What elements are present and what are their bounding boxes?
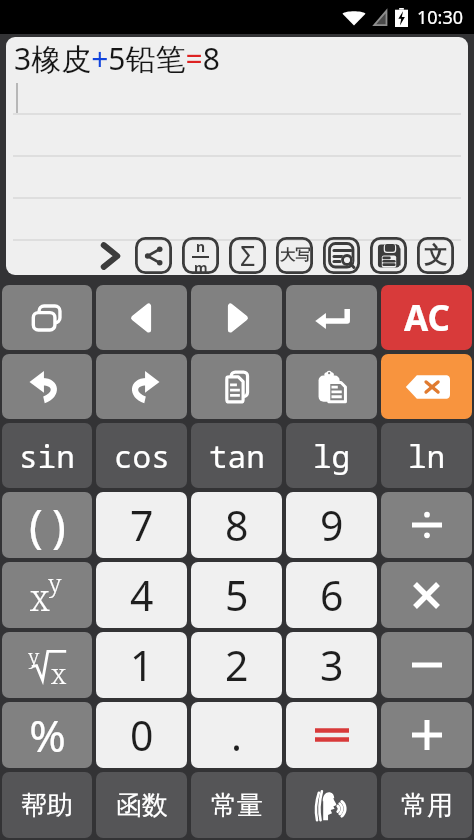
staticText: 10:30 [417,5,464,30]
staticText: % [29,705,66,765]
other: Divide [412,511,442,539]
staticText: 文 [424,241,447,270]
button[interactable]: Plus [381,702,472,768]
other: Move left [127,303,157,333]
button[interactable]: Enter [286,285,377,350]
other: Redo [123,370,161,404]
other: Plus [412,720,442,750]
button[interactable]: Text mode [417,237,454,274]
staticText: 1 [130,637,154,693]
button[interactable]: 常量 [191,772,282,838]
button[interactable]: Divide [381,492,472,558]
button[interactable]: 函数 [96,772,187,838]
other: Multiply [414,583,439,608]
staticText: 大写 [280,246,310,265]
staticText: 9 [320,497,344,553]
button[interactable]: Search history [323,237,360,274]
button[interactable]: Windows [2,285,92,350]
staticText: 函数 [116,789,168,822]
button[interactable]: Save [370,237,407,274]
button[interactable]: Uppercase [276,237,313,274]
other: Equals [315,727,349,743]
button[interactable]: 4 [96,562,187,628]
other: Undo [28,370,66,404]
button[interactable]: Undo [2,354,92,419]
button[interactable]: ( [2,492,92,558]
button[interactable]: tan [191,423,282,488]
button[interactable]: Move right [191,285,282,350]
button[interactable]: Sum [229,237,266,274]
other: Windows [29,303,65,333]
button[interactable]: Fraction [182,237,219,274]
staticText: m [194,258,208,274]
button[interactable]: Copy [191,354,282,419]
button[interactable]: 8 [191,492,282,558]
staticText: x [51,654,67,688]
staticText: tan [209,435,265,477]
staticText: 2 [225,637,249,693]
button[interactable]: Multiply [381,562,472,628]
staticText: 3橡皮+5铅笔=8 [14,38,220,79]
button[interactable]: 9 [286,492,377,558]
button[interactable]: 5 [191,562,282,628]
button[interactable]: 1 [96,632,187,698]
button[interactable]: 3 [286,632,377,698]
other: Move right [222,303,252,333]
staticText: 7 [130,497,154,553]
button[interactable]: % [2,702,92,768]
button[interactable]: lg [286,423,377,488]
staticText: 6 [320,567,344,623]
button[interactable]: 常用 [381,772,472,838]
staticText: 5 [225,567,249,623]
other: Paste [316,371,348,403]
staticText: 3 [320,637,344,693]
staticText: 帮助 [21,789,73,822]
button[interactable]: 2 [191,632,282,698]
staticText: x [30,573,50,622]
button[interactable]: 7 [96,492,187,558]
staticText: 4 [130,567,154,623]
button[interactable]: Redo [96,354,187,419]
button[interactable]: sin [2,423,92,488]
other: Copy [220,370,254,404]
button[interactable]: x [2,562,92,628]
staticText: 常用 [401,789,453,822]
button[interactable]: cos [96,423,187,488]
staticText: ln [408,435,446,477]
other: Enter [313,303,351,333]
staticText: n [196,237,206,256]
button[interactable]: Equals [286,702,377,768]
other: Read aloud [310,786,354,824]
staticText: 常量 [211,789,263,822]
button[interactable]: Minus [381,632,472,698]
button[interactable]: ln [381,423,472,488]
staticText: 0 [130,707,154,763]
button[interactable]: 6 [286,562,377,628]
staticText: y [48,566,62,599]
button[interactable]: Next [90,237,130,274]
staticText: ) [52,494,66,557]
staticText: 8 [225,497,249,553]
other: Minus [412,662,442,668]
button[interactable]: x [2,632,92,698]
staticText: AC [404,294,450,342]
staticText: cos [114,435,170,477]
button[interactable]: 0 [96,702,187,768]
staticText: lg [313,435,351,477]
other: Backspace [404,373,450,401]
button[interactable]: Backspace [381,354,472,419]
button[interactable]: Share [135,237,172,274]
button[interactable]: . [191,702,282,768]
button[interactable]: Paste [286,354,377,419]
button[interactable]: Move left [96,285,187,350]
staticText: sin [19,435,75,477]
button[interactable]: 帮助 [2,772,92,838]
button[interactable]: AC [381,285,472,350]
staticText: Σ [240,237,256,274]
staticText: y [28,643,40,670]
staticText: . [231,707,242,763]
button[interactable]: Read aloud [286,772,377,838]
staticText: ( [29,494,43,557]
